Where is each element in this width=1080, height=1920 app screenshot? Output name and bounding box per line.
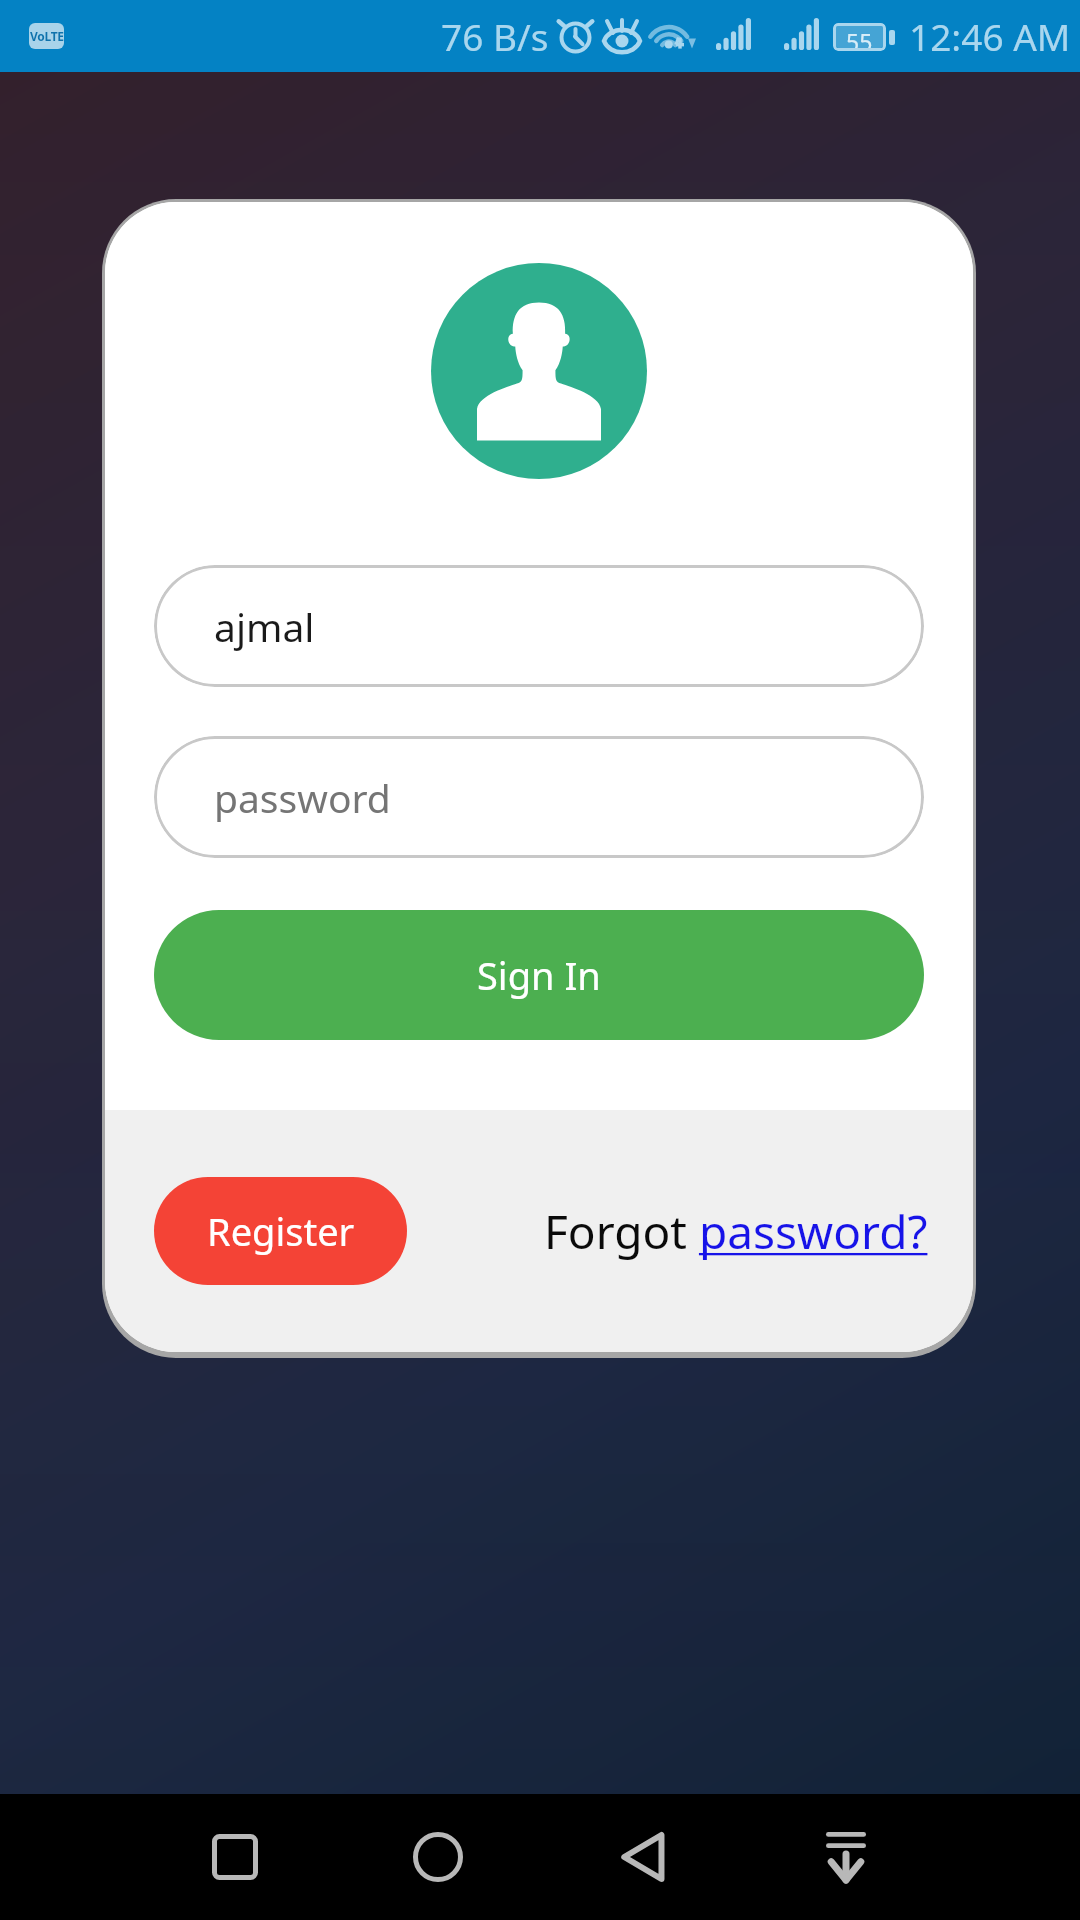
staticText: 55	[846, 26, 873, 48]
staticText: password	[214, 771, 391, 824]
staticText: ajmal	[214, 600, 315, 653]
staticText: Register	[207, 1205, 355, 1257]
button[interactable]: Hide navigation bar	[774, 1794, 918, 1920]
button[interactable]: Sign In	[154, 910, 924, 1040]
staticText: VoLTE	[30, 28, 64, 44]
staticText: 12:46 AM	[909, 11, 1071, 61]
button[interactable]: ajmal	[154, 565, 924, 687]
staticText: Forgot password?	[544, 1200, 928, 1263]
button[interactable]: Home	[366, 1794, 510, 1920]
button[interactable]: Forgot password?	[544, 1200, 928, 1263]
button[interactable]: Back	[570, 1794, 714, 1920]
button[interactable]: password	[154, 736, 924, 858]
button[interactable]: Register	[154, 1177, 407, 1285]
staticText: 76 B/s	[441, 11, 549, 61]
button[interactable]: Recent apps	[162, 1794, 306, 1920]
staticText: Sign In	[477, 949, 601, 1001]
